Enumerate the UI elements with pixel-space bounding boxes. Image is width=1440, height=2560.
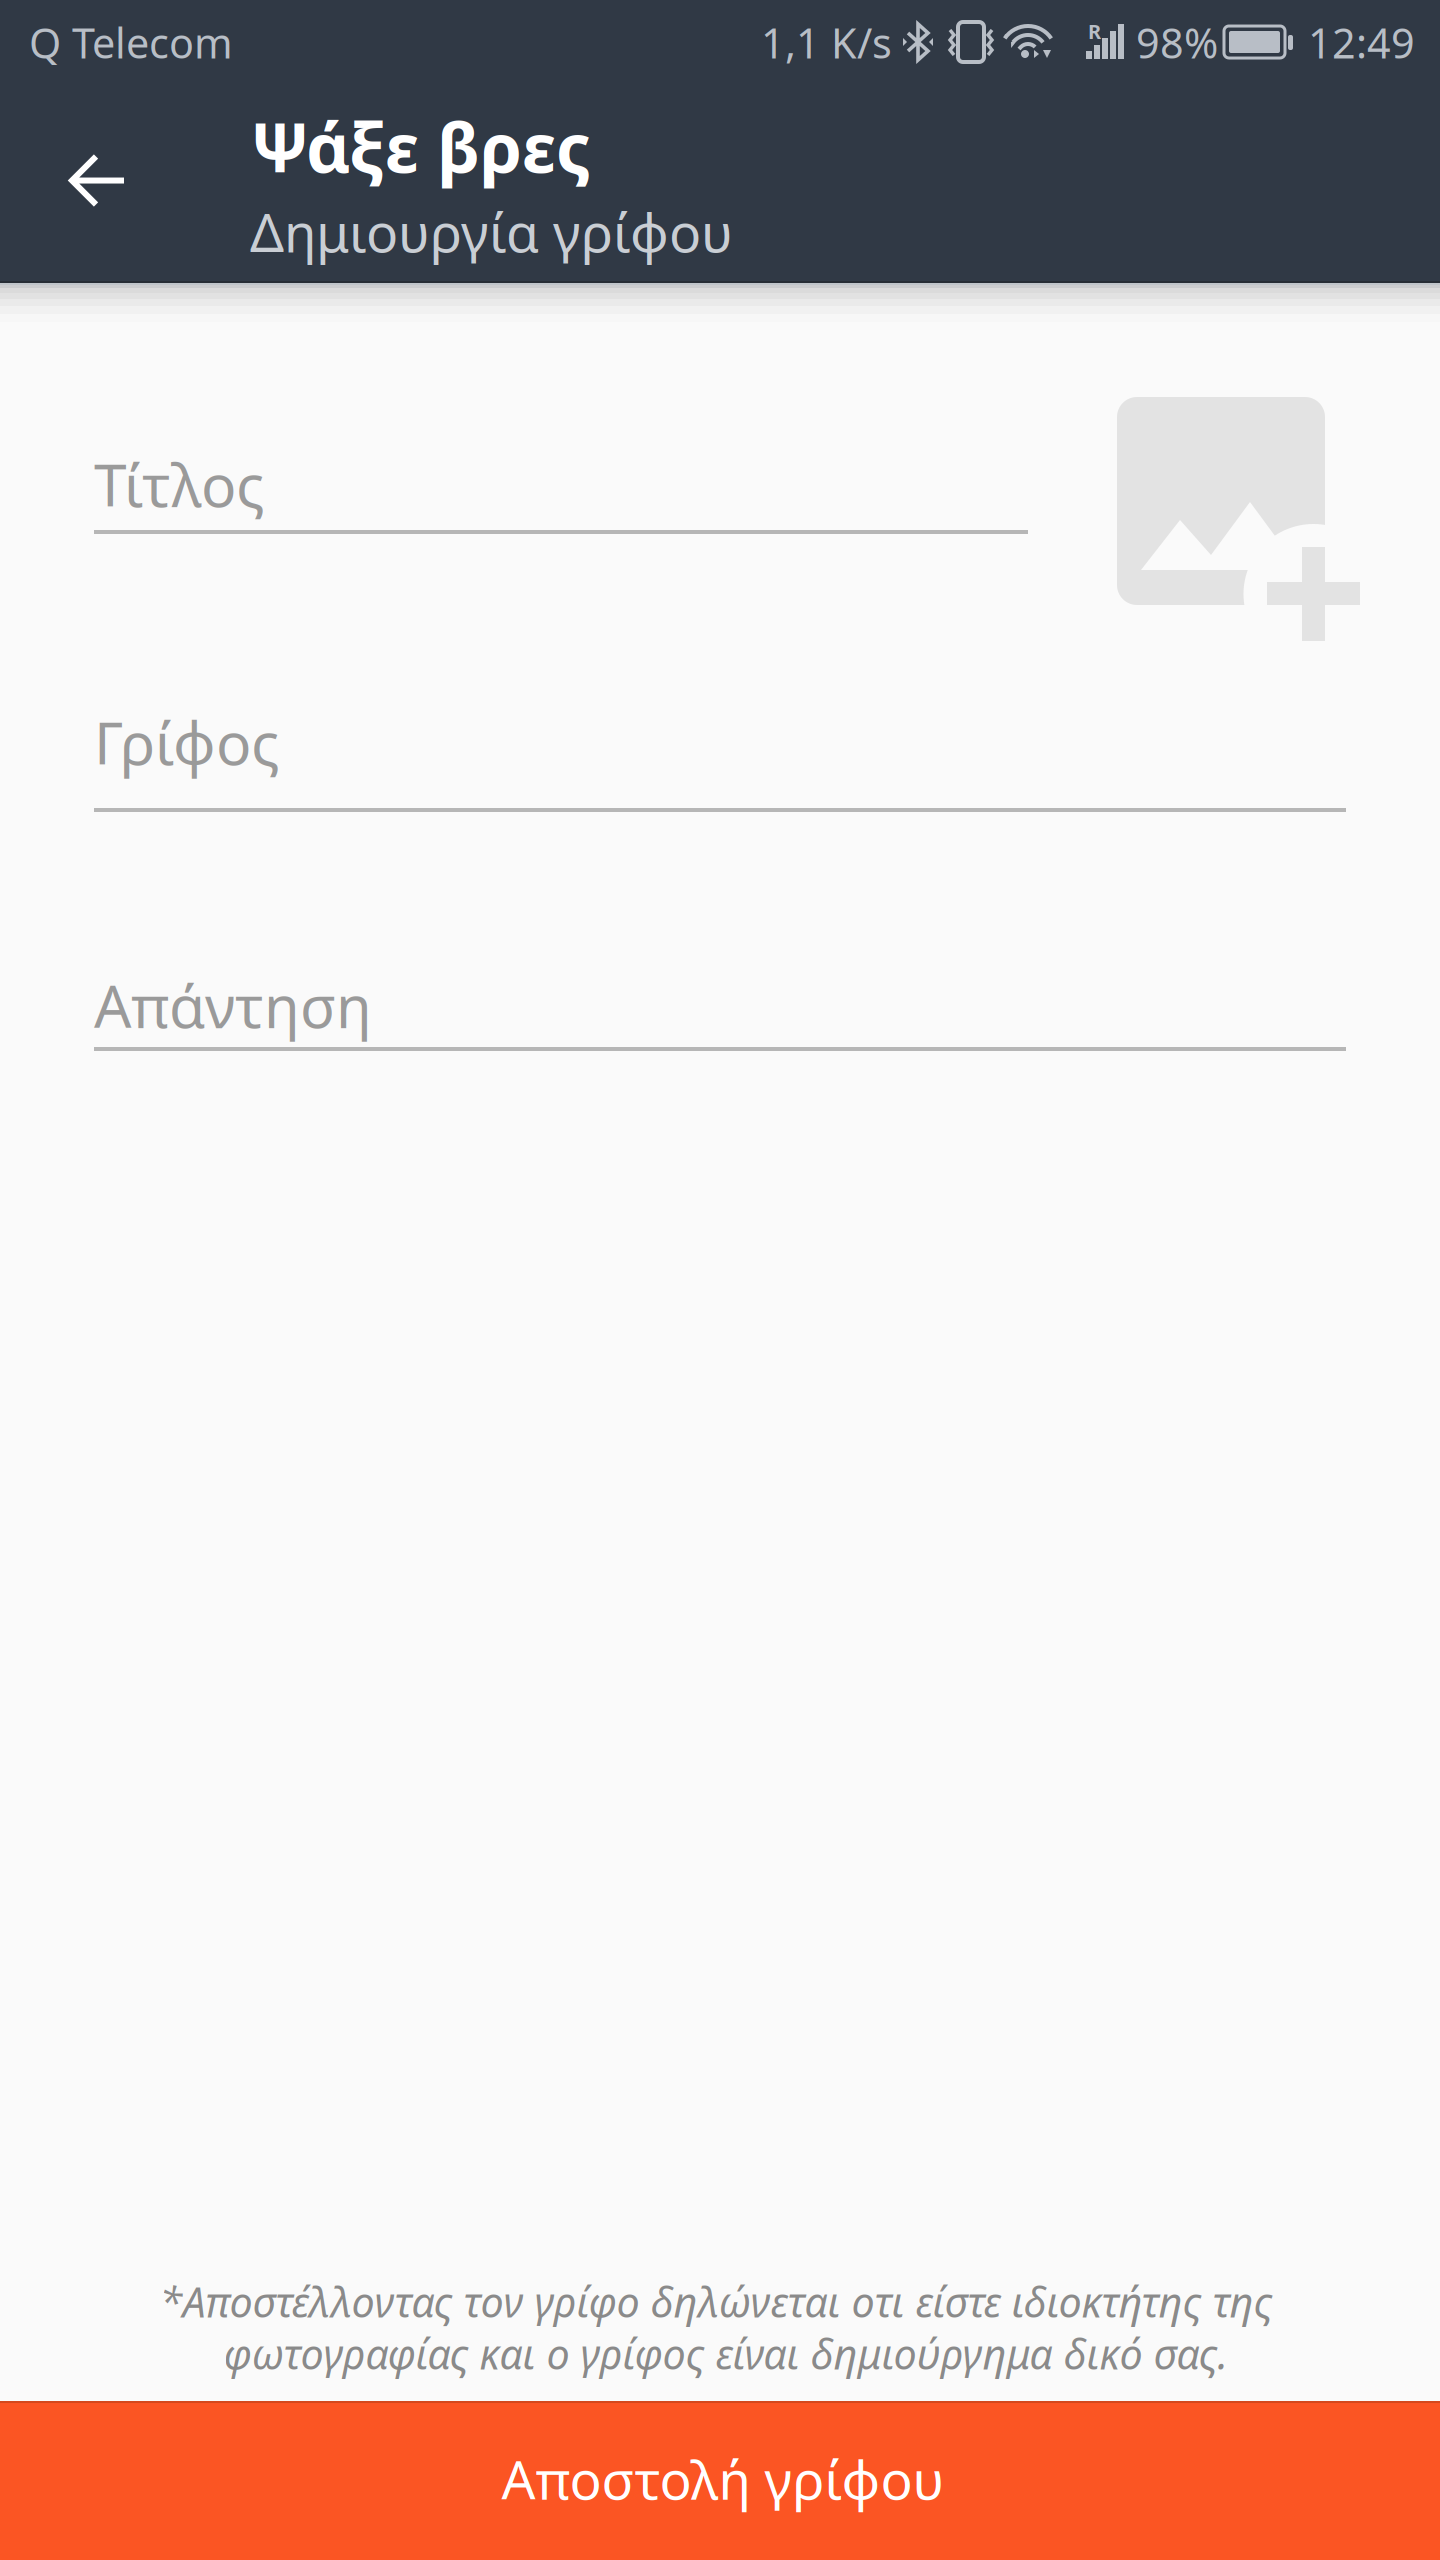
staticText: 1,1 K/s [761, 15, 892, 70]
staticText: φωτογραφίας και ο γρίφος είναι δημιούργη… [223, 2326, 1228, 2381]
staticText: *Αποστέλλοντας τον γρίφο δηλώνεται οτι ε… [159, 2274, 1272, 2329]
staticText: Δημιουργία γρίφου [250, 196, 733, 267]
staticText: Γρίφος [94, 703, 280, 781]
staticText: Ψάξε βρες [250, 101, 591, 191]
button[interactable]: Απάντηση [94, 966, 1346, 1051]
staticText: Απάντηση [94, 966, 372, 1044]
button[interactable]: Γρίφος [94, 703, 1346, 812]
button[interactable]: Αποστολή γρίφου [0, 2401, 1440, 2560]
button[interactable]: Τίτλος [94, 445, 1028, 534]
button[interactable]: Back [26, 109, 170, 253]
button[interactable]: Add photo [1117, 397, 1397, 677]
staticText: R [1088, 18, 1101, 45]
staticText: Αποστολή γρίφου [501, 2443, 944, 2514]
staticText: 98% [1136, 15, 1218, 70]
staticText: Τίτλος [94, 445, 265, 523]
staticText: 12:49 [1308, 15, 1415, 70]
staticText: Q Telecom [29, 15, 233, 70]
